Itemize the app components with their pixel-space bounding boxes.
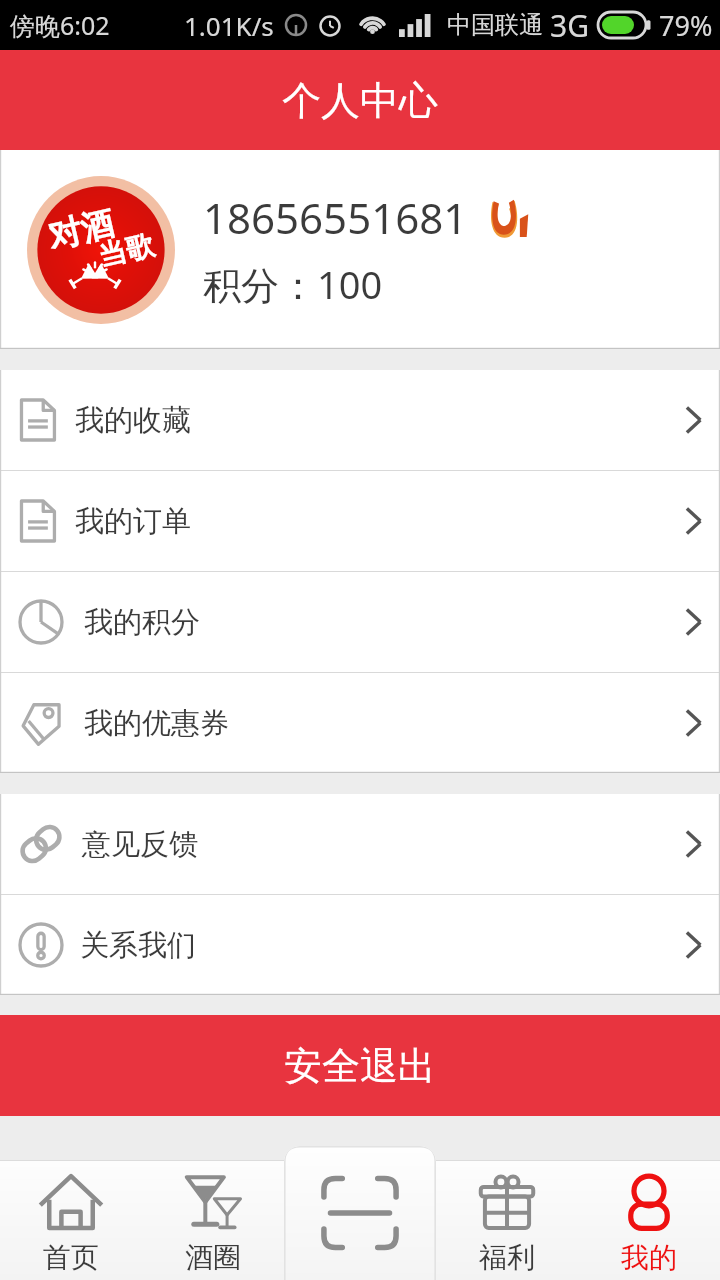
staticText: 我的积分 xyxy=(84,604,200,641)
staticText: 酒圈 xyxy=(185,1240,241,1275)
button[interactable]: 我的 xyxy=(578,1161,720,1280)
button[interactable]: 我的积分 xyxy=(0,572,720,672)
button[interactable]: 我的收藏 xyxy=(0,370,720,470)
staticText: 当歌 xyxy=(95,227,157,274)
staticText: 我的订单 xyxy=(75,503,191,540)
staticText: 79% xyxy=(659,7,713,44)
staticText: 1.01K/s xyxy=(184,8,274,43)
staticText: 首页 xyxy=(43,1240,99,1275)
staticText: 我的优惠券 xyxy=(84,705,229,742)
button[interactable]: 我的订单 xyxy=(0,471,720,571)
staticText: 关系我们 xyxy=(80,927,196,964)
staticText: 积分：100 xyxy=(203,258,383,310)
staticText: 18656551681 xyxy=(203,189,468,246)
staticText: 3G xyxy=(550,5,589,46)
staticText: 安全退出 xyxy=(284,1042,436,1090)
button[interactable]: 意见反馈 xyxy=(0,794,720,894)
staticText: 中国联通 xyxy=(447,10,543,40)
button[interactable]: 酒圈 xyxy=(142,1161,284,1280)
button[interactable]: 扫一扫 xyxy=(284,1146,436,1280)
staticText: 福利 xyxy=(479,1240,535,1275)
button[interactable]: 我的优惠券 xyxy=(0,673,720,773)
staticText: 意见反馈 xyxy=(82,826,198,863)
button[interactable]: 首页 xyxy=(0,1161,142,1280)
button[interactable]: 关系我们 xyxy=(0,895,720,995)
button[interactable]: 安全退出 xyxy=(0,1015,720,1116)
staticText: 对酒 xyxy=(44,202,118,258)
staticText: 个人中心 xyxy=(282,76,438,125)
staticText: 我的 xyxy=(621,1240,677,1275)
staticText: 傍晚6:02 xyxy=(10,8,110,42)
staticText: 我的收藏 xyxy=(75,402,191,439)
button[interactable]: 福利 xyxy=(436,1161,578,1280)
